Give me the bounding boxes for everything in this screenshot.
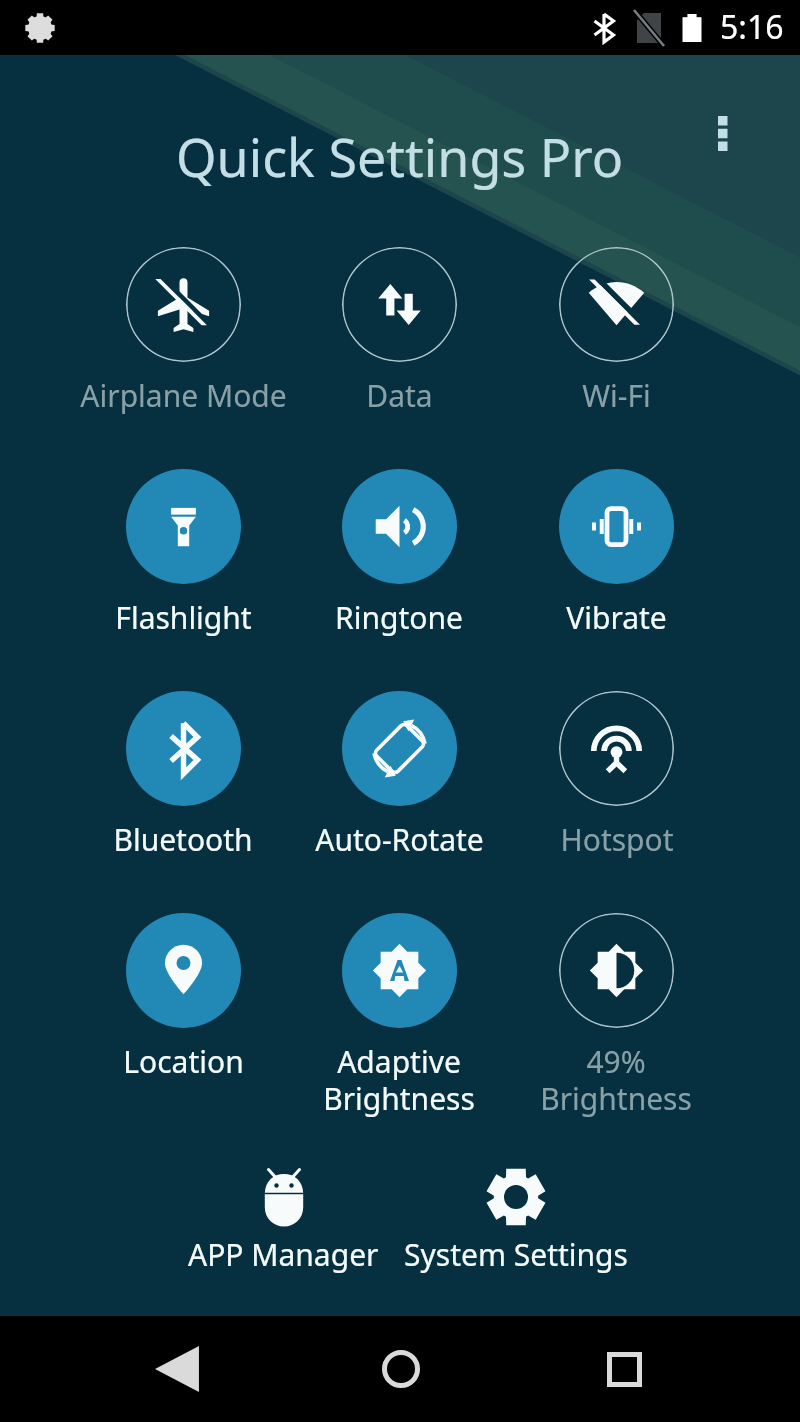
button[interactable]: Data	[275, 241, 523, 456]
staticText: Adaptive Brightness	[323, 1041, 475, 1119]
button[interactable]: Back	[128, 1319, 228, 1419]
button[interactable]: System Settings	[366, 1164, 666, 1289]
staticText: Quick Settings Pro	[176, 121, 624, 192]
button[interactable]: 49% Brightness	[492, 907, 740, 1122]
staticText: APP Manager	[188, 1234, 379, 1275]
button[interactable]: Recents	[574, 1319, 674, 1419]
staticText: Hotspot	[560, 819, 674, 860]
button[interactable]: Bluetooth	[59, 685, 307, 900]
button[interactable]: Home	[351, 1319, 451, 1419]
staticText: 49% Brightness	[540, 1041, 692, 1119]
button[interactable]: Hotspot	[492, 685, 740, 900]
button[interactable]: Vibrate	[492, 463, 740, 678]
button[interactable]: Adaptive Brightness	[275, 907, 523, 1122]
button[interactable]: Location	[59, 907, 307, 1122]
button[interactable]: Wi-Fi	[492, 241, 740, 456]
staticText: Airplane Mode	[80, 375, 287, 416]
button[interactable]: APP Manager	[169, 1164, 397, 1289]
staticText: Location	[123, 1041, 244, 1082]
button[interactable]: Airplane Mode	[59, 241, 307, 456]
staticText: Data	[366, 375, 433, 416]
staticText: System Settings	[404, 1234, 628, 1275]
staticText: Flashlight	[115, 597, 252, 638]
staticText: Auto-Rotate	[315, 819, 484, 860]
button[interactable]: Ringtone	[275, 463, 523, 678]
button[interactable]: More options	[698, 96, 748, 170]
staticText: Wi-Fi	[582, 375, 651, 416]
staticText: Ringtone	[335, 597, 463, 638]
staticText: 5:16	[720, 5, 784, 49]
staticText: Bluetooth	[113, 819, 253, 860]
staticText: Vibrate	[566, 597, 667, 638]
button[interactable]: Auto-Rotate	[275, 685, 523, 900]
button[interactable]: Flashlight	[59, 463, 307, 678]
